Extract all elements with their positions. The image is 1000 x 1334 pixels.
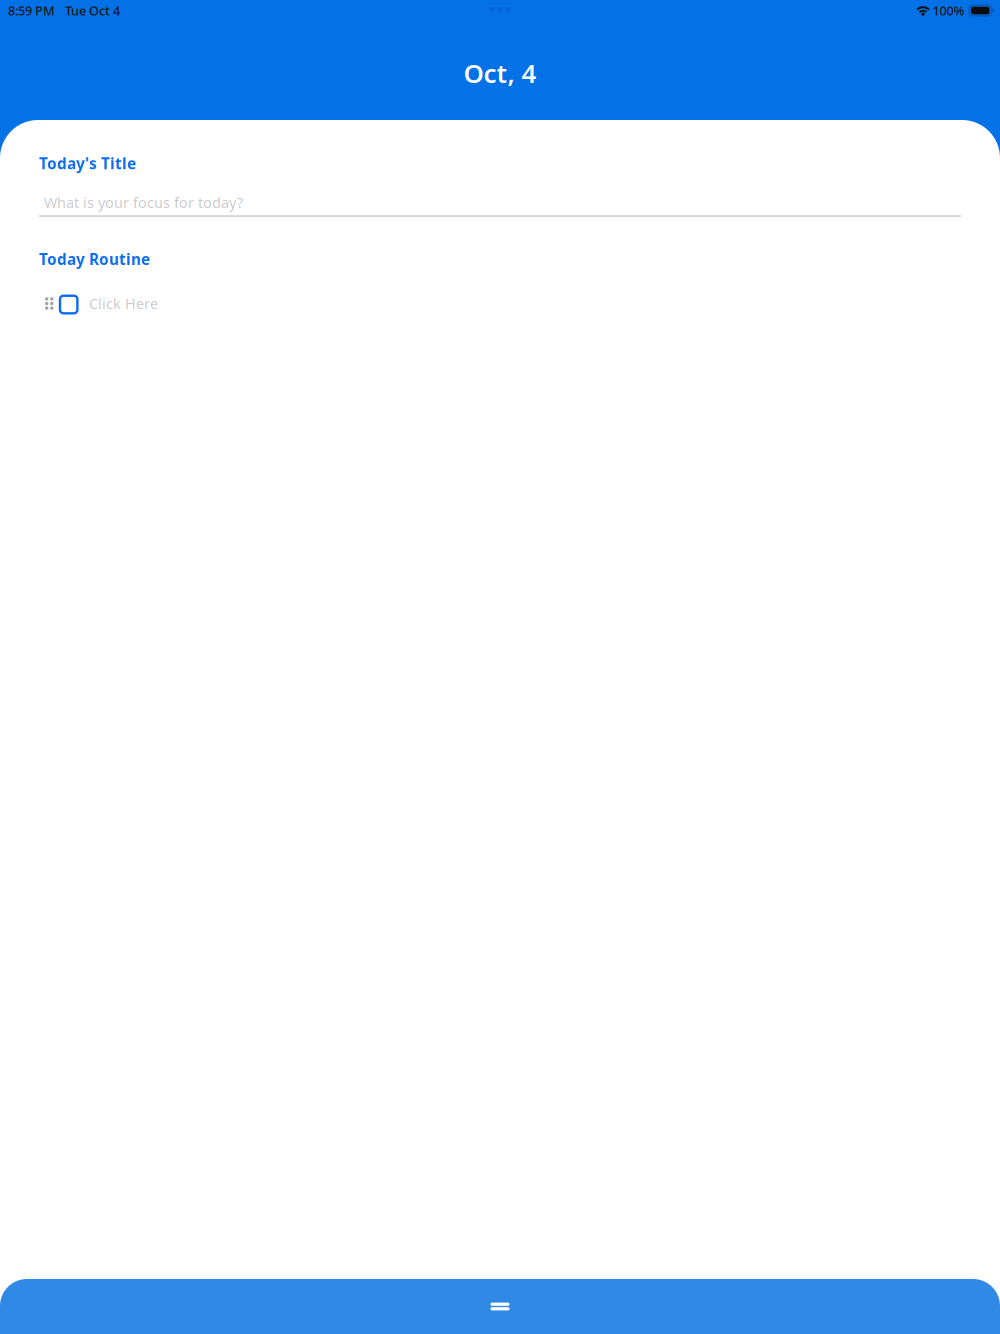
staticText: Today's Title	[39, 153, 136, 174]
staticText: 100%	[932, 2, 964, 19]
staticText: Oct, 4	[463, 55, 536, 91]
staticText: What is your focus for today?	[44, 193, 243, 212]
staticText: 8:59 PM	[8, 2, 55, 19]
button[interactable]: What is your focus for today?	[39, 193, 961, 217]
staticText: Today Routine	[39, 249, 150, 269]
button[interactable]: Click Here	[39, 290, 961, 320]
button[interactable]: Menu	[0, 1279, 1000, 1334]
staticText: Click Here	[89, 294, 158, 313]
staticText: Tue Oct 4	[65, 2, 120, 19]
